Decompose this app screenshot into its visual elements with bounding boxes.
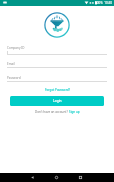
button[interactable]: Company ID (7, 46, 107, 55)
button[interactable]: Forgot Password? (44, 87, 71, 93)
button[interactable]: Sign up (69, 110, 80, 114)
staticText: 100% 10:30 (95, 1, 112, 5)
button[interactable]: Email (7, 62, 107, 68)
staticText: Email (7, 62, 15, 66)
button[interactable]: Back (28, 173, 37, 182)
button[interactable]: Home (52, 173, 61, 182)
staticText: Don't have an account? (35, 110, 69, 114)
staticText: Password (7, 76, 21, 80)
button[interactable]: Recent apps (76, 173, 85, 182)
staticText: Company ID (7, 46, 25, 50)
button[interactable]: Login (10, 96, 104, 106)
button[interactable]: Password (7, 76, 107, 82)
staticText: Login (53, 99, 62, 103)
